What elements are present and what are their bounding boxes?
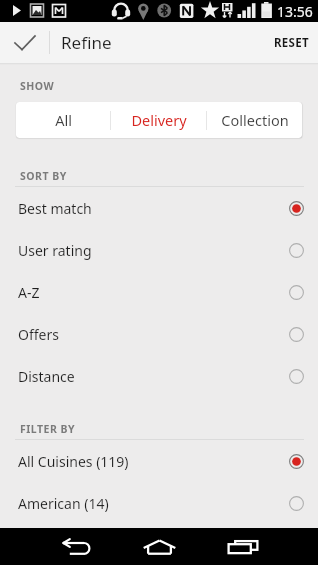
- button[interactable]: Distance: [0, 355, 318, 397]
- button[interactable]: RESET: [260, 25, 318, 61]
- button[interactable]: Best match: [0, 187, 318, 229]
- staticText: A-Z: [18, 283, 40, 302]
- staticText: SHOW: [20, 79, 55, 93]
- button[interactable]: All: [16, 102, 110, 138]
- button[interactable]: American (14): [0, 482, 318, 524]
- staticText: All Cuisines (119): [18, 452, 129, 471]
- button[interactable]: Recent apps: [219, 528, 267, 565]
- staticText: Collection: [221, 110, 289, 130]
- staticText: Offers: [18, 325, 59, 344]
- staticText: Distance: [18, 367, 75, 386]
- button[interactable]: Home: [135, 528, 183, 565]
- staticText: 13:56: [277, 2, 313, 21]
- button[interactable]: User rating: [0, 229, 318, 271]
- staticText: Refine: [61, 31, 112, 54]
- button[interactable]: Collection: [207, 102, 302, 138]
- staticText: FILTER BY: [20, 422, 76, 436]
- staticText: All: [55, 110, 72, 130]
- staticText: American (14): [18, 494, 109, 513]
- button[interactable]: Delivery: [111, 102, 206, 138]
- button[interactable]: Apply: [0, 22, 49, 63]
- staticText: RESET: [274, 35, 309, 51]
- button[interactable]: Offers: [0, 313, 318, 355]
- staticText: Delivery: [131, 110, 187, 130]
- staticText: SORT BY: [20, 169, 67, 183]
- button[interactable]: All Cuisines (119): [0, 440, 318, 482]
- button[interactable]: Back: [52, 528, 100, 565]
- staticText: Best match: [18, 199, 92, 218]
- staticText: User rating: [18, 241, 92, 260]
- button[interactable]: A-Z: [0, 271, 318, 313]
